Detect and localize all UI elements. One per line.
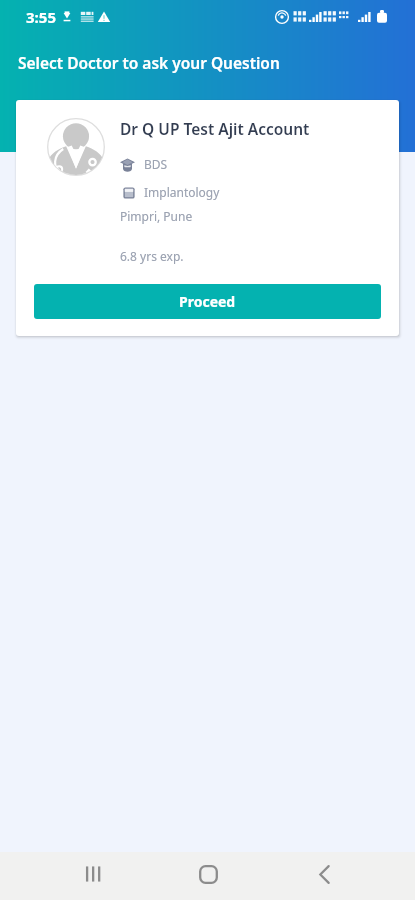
- button[interactable]: Dr Q UP Test Ajit Account: [16, 100, 399, 336]
- staticText: 6.8 yrs exp.: [120, 248, 184, 264]
- staticText: Implantology: [144, 184, 220, 200]
- button[interactable]: Recent apps: [68, 850, 116, 898]
- staticText: Dr Q UP Test Ajit Account: [120, 118, 310, 139]
- staticText: Select Doctor to ask your Question: [18, 52, 280, 73]
- staticText: Pimpri, Pune: [120, 208, 193, 224]
- staticText: BDS: [144, 156, 168, 172]
- staticText: Proceed: [179, 292, 236, 311]
- button[interactable]: Proceed: [34, 284, 381, 319]
- button[interactable]: Back: [300, 850, 348, 898]
- staticText: 3:55: [26, 7, 56, 27]
- button[interactable]: Home: [184, 850, 232, 898]
